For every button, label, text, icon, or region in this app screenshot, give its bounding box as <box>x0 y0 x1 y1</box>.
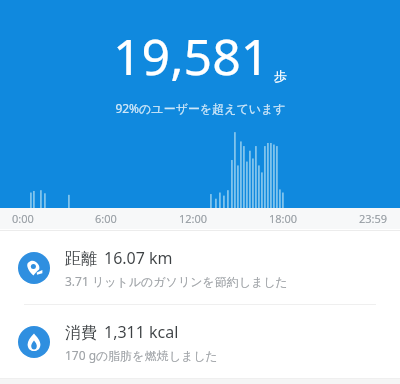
staticText: 消費 <box>65 323 97 343</box>
staticText: 距離 <box>65 249 97 269</box>
staticText: 23:59 <box>359 211 388 226</box>
staticText: 12:00 <box>179 211 208 226</box>
button[interactable]: 距離 <box>0 231 400 304</box>
staticText: 3.71 リットルのガソリンを節約しました <box>65 273 288 289</box>
staticText: 6:00 <box>95 211 117 226</box>
staticText: 19,581 <box>113 22 270 90</box>
staticText: 92%のユーザーを超えています <box>115 100 286 116</box>
staticText: 歩 <box>274 68 287 84</box>
staticText: 170 gの脂肪を燃焼しました <box>65 347 218 363</box>
staticText: 0:00 <box>12 211 34 226</box>
staticText: 16.07 km <box>104 247 173 269</box>
staticText: 18:00 <box>269 211 298 226</box>
button[interactable]: 消費 <box>0 305 400 378</box>
staticText: 1,311 kcal <box>104 321 179 343</box>
